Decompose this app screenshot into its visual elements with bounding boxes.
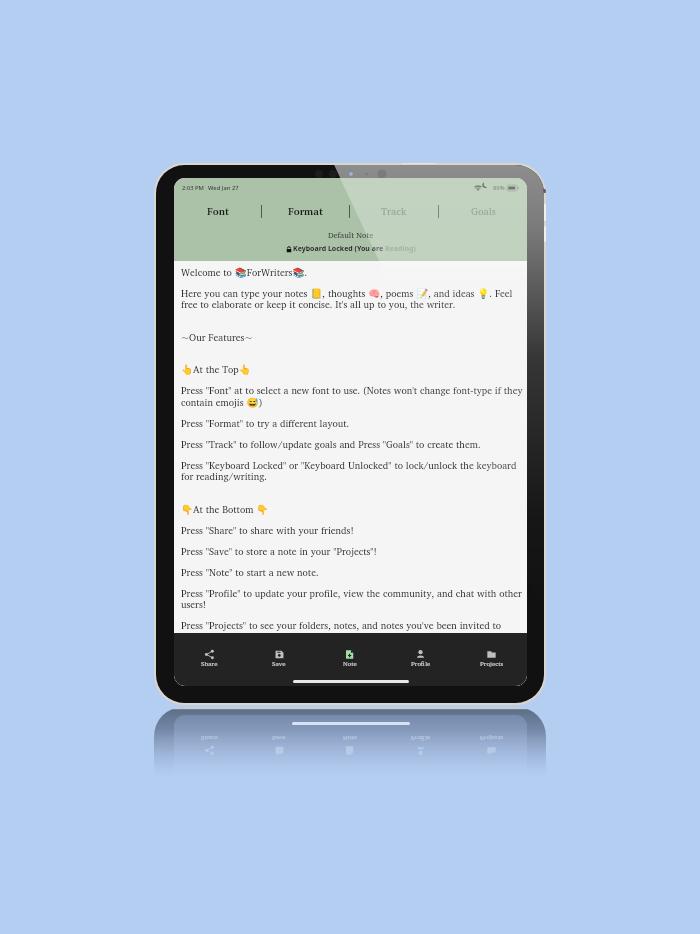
staticText: Welcome to 📚ForWriters📚. [181, 264, 308, 280]
staticText: ~Our Features~ [181, 329, 253, 345]
staticText: 👆At the Top👆 [181, 361, 251, 377]
staticText: Keyboard Locked (You are [293, 244, 385, 254]
staticText: Press "Save" to store a note in your "Pr… [181, 543, 377, 559]
staticText: Press "Projects" to see your folders, no… [181, 617, 525, 633]
staticText: Profile [411, 658, 431, 669]
staticText: Profile [411, 733, 431, 744]
button[interactable]: Goals [439, 199, 527, 224]
staticText: Share [201, 658, 218, 669]
staticText: Press "Profile" to update your profile, … [181, 585, 525, 612]
staticText: Press "Note" to start a new note. [181, 564, 319, 580]
staticText: Font [207, 203, 229, 220]
staticText: Here you can type your notes 📒, thoughts… [181, 285, 525, 312]
staticText: Reading) [385, 244, 416, 254]
staticText: Note [343, 733, 357, 744]
staticText: 👇At the Bottom 👇 [181, 501, 269, 517]
button[interactable]: Note [314, 649, 385, 671]
staticText: Wed Jan 27 [208, 184, 239, 192]
staticText: Save [272, 658, 286, 669]
button[interactable]: Projects [456, 649, 527, 671]
staticText: Default Note [174, 228, 527, 241]
staticText: Save [272, 733, 286, 744]
staticText: Projects [480, 658, 504, 669]
staticText: Share [201, 733, 218, 744]
button[interactable]: Profile [385, 649, 456, 671]
button[interactable]: Keyboard Locked (You are [174, 244, 527, 254]
staticText: 2:03 PM [182, 184, 204, 192]
staticText: Press "Format" to try a different layout… [181, 415, 350, 431]
staticText: Press "Keyboard Locked" or "Keyboard Unl… [181, 457, 525, 484]
staticText: Note [343, 658, 357, 669]
button[interactable]: Font [174, 199, 261, 224]
button[interactable]: Format [262, 199, 349, 224]
staticText: Format [288, 203, 323, 220]
staticText: Goals [471, 203, 496, 220]
staticText: Press "Track" to follow/update goals and… [181, 436, 481, 452]
staticText: 89% [493, 184, 505, 192]
staticText: Track [381, 203, 407, 220]
staticText: Projects [480, 733, 504, 744]
staticText: Press "Font" at to select a new font to … [181, 382, 525, 410]
button[interactable]: Save [244, 649, 314, 671]
button[interactable]: Track [350, 199, 438, 224]
button[interactable]: Share [174, 649, 244, 671]
staticText: Press "Share" to share with your friends… [181, 522, 354, 538]
